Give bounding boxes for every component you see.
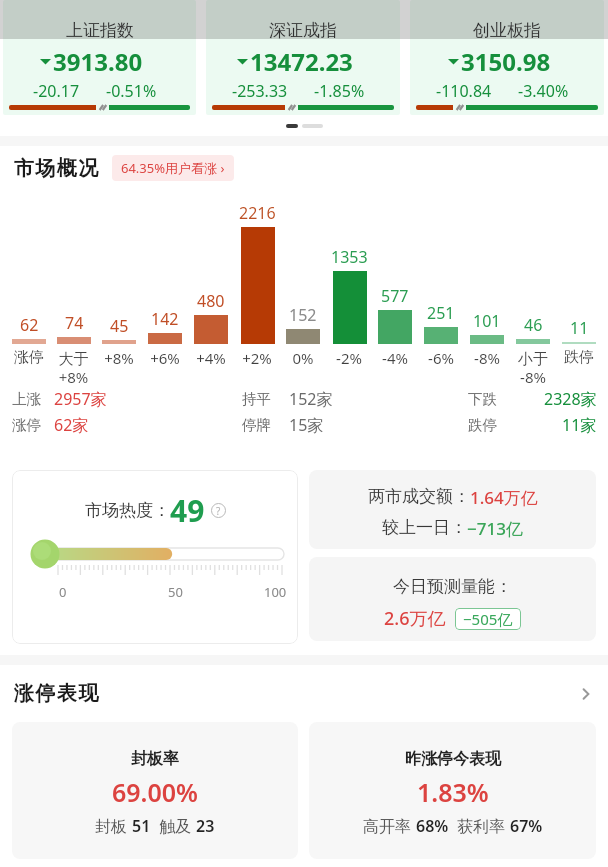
staticText: 市场概况 bbox=[13, 156, 99, 181]
staticText: 2957家 bbox=[54, 388, 107, 410]
staticText: 251 bbox=[427, 302, 455, 324]
staticText: 100 bbox=[264, 583, 287, 601]
staticText: -2% bbox=[336, 348, 362, 368]
staticText: -20.17 bbox=[33, 80, 80, 102]
button[interactable]: 创业板指 bbox=[410, 0, 604, 115]
staticText: 触及 bbox=[151, 815, 196, 837]
staticText: 51 bbox=[132, 815, 151, 837]
staticText: 480 bbox=[197, 290, 225, 312]
staticText: 3150.98 bbox=[461, 45, 551, 78]
staticText: -253.33 bbox=[232, 80, 288, 102]
button[interactable]: 上证指数 bbox=[3, 0, 196, 115]
staticText: 152 bbox=[289, 304, 317, 326]
staticText: 涨停表现 bbox=[13, 681, 99, 706]
staticText: 62 bbox=[20, 314, 39, 336]
staticText: 142 bbox=[151, 308, 179, 330]
staticText: 封板率 bbox=[131, 749, 179, 769]
staticText: 大于 +8% bbox=[51, 348, 96, 386]
staticText: 1.64万亿 bbox=[470, 486, 538, 509]
staticText: 152家 bbox=[289, 388, 333, 410]
staticText: 15家 bbox=[289, 414, 324, 436]
staticText: -6% bbox=[428, 348, 454, 368]
staticText: 101 bbox=[473, 310, 501, 332]
button[interactable]: 两市成交额： bbox=[309, 470, 596, 549]
staticText: 市场热度： bbox=[85, 500, 170, 521]
staticText: 46 bbox=[524, 314, 543, 336]
button[interactable]: 封板率 bbox=[12, 722, 298, 859]
staticText: 两市成交额： bbox=[368, 486, 470, 507]
staticText: 今日预测量能： bbox=[393, 576, 512, 597]
staticText: 11 bbox=[570, 317, 589, 339]
staticText: 1.83% bbox=[417, 775, 489, 809]
staticText: -4% bbox=[382, 348, 408, 368]
staticText: 涨停 bbox=[12, 416, 41, 434]
staticText: 2216 bbox=[239, 202, 276, 224]
button[interactable]: 深证成指 bbox=[206, 0, 400, 115]
staticText: +2% bbox=[242, 348, 272, 368]
staticText: +6% bbox=[150, 348, 180, 368]
staticText: 上涨 bbox=[12, 390, 41, 408]
staticText: 577 bbox=[381, 285, 409, 307]
staticText: 45 bbox=[110, 315, 129, 337]
staticText: 0 bbox=[59, 583, 67, 601]
staticText: 深证成指 bbox=[269, 20, 337, 41]
staticText: 74 bbox=[65, 312, 84, 334]
staticText: 封板 bbox=[95, 815, 132, 837]
staticText: +4% bbox=[196, 348, 226, 368]
staticText: −713亿 bbox=[467, 517, 523, 540]
staticText: 高开率 bbox=[363, 815, 416, 837]
button[interactable]: 今日预测量能： bbox=[309, 557, 596, 641]
staticText: 涨停 bbox=[14, 348, 44, 367]
staticText: +8% bbox=[104, 348, 134, 368]
staticText: 50 bbox=[168, 583, 183, 601]
staticText: 49 bbox=[170, 490, 205, 531]
staticText: 停牌 bbox=[242, 416, 271, 434]
button[interactable]: 64.35%用户看涨 › bbox=[112, 155, 234, 181]
staticText: 69.00% bbox=[112, 775, 198, 809]
staticText: 上证指数 bbox=[66, 20, 134, 41]
staticText: -3.40% bbox=[518, 80, 569, 102]
staticText: 持平 bbox=[242, 390, 271, 408]
staticText: −505亿 bbox=[463, 609, 513, 629]
staticText: 67% bbox=[510, 815, 543, 837]
staticText: 跌停 bbox=[468, 416, 497, 434]
button[interactable]: 涨停表现 bbox=[13, 665, 594, 722]
staticText: -8% bbox=[474, 348, 500, 368]
staticText: 68% bbox=[416, 815, 449, 837]
staticText: 0% bbox=[292, 348, 314, 368]
staticText: 1353 bbox=[331, 246, 368, 268]
staticText: 11家 bbox=[562, 414, 597, 436]
staticText: -110.84 bbox=[436, 80, 492, 102]
staticText: 23 bbox=[196, 815, 215, 837]
staticText: 62家 bbox=[54, 414, 89, 436]
button[interactable]: 市场热度： bbox=[12, 470, 298, 644]
staticText: 获利率 bbox=[449, 815, 510, 837]
staticText: 2328家 bbox=[544, 388, 597, 410]
staticText: 小于 -8% bbox=[510, 348, 556, 386]
staticText: 创业板指 bbox=[473, 20, 541, 41]
staticText: 跌停 bbox=[564, 348, 594, 367]
staticText: -1.85% bbox=[314, 80, 365, 102]
button[interactable]: 昨涨停今表现 bbox=[309, 722, 596, 859]
staticText: 昨涨停今表现 bbox=[405, 749, 501, 769]
staticText: -0.51% bbox=[106, 80, 157, 102]
staticText: 2.6万亿 bbox=[384, 606, 446, 631]
staticText: 下跌 bbox=[468, 390, 497, 408]
staticText: 3913.80 bbox=[53, 45, 143, 78]
staticText: 较上一日： bbox=[382, 517, 467, 538]
staticText: 13472.23 bbox=[250, 45, 353, 78]
staticText: ? bbox=[216, 504, 221, 518]
staticText: 64.35%用户看涨 › bbox=[121, 159, 225, 177]
